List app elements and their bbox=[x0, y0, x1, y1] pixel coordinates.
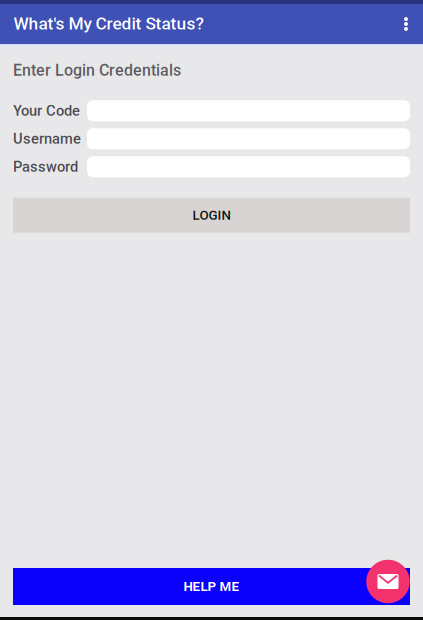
button[interactable]: Email support bbox=[366, 560, 410, 603]
button[interactable]: More options bbox=[393, 0, 419, 43]
button[interactable]: LOGIN bbox=[13, 198, 410, 233]
staticText: LOGIN bbox=[192, 207, 230, 223]
staticText: Enter Login Credentials bbox=[13, 61, 181, 80]
button[interactable]: HELP ME bbox=[13, 568, 410, 605]
staticText: What's My Credit Status? bbox=[13, 13, 203, 34]
staticText: Your Code bbox=[13, 102, 80, 119]
staticText: Password bbox=[13, 158, 78, 175]
staticText: HELP ME bbox=[183, 579, 239, 594]
staticText: Username bbox=[13, 130, 81, 147]
